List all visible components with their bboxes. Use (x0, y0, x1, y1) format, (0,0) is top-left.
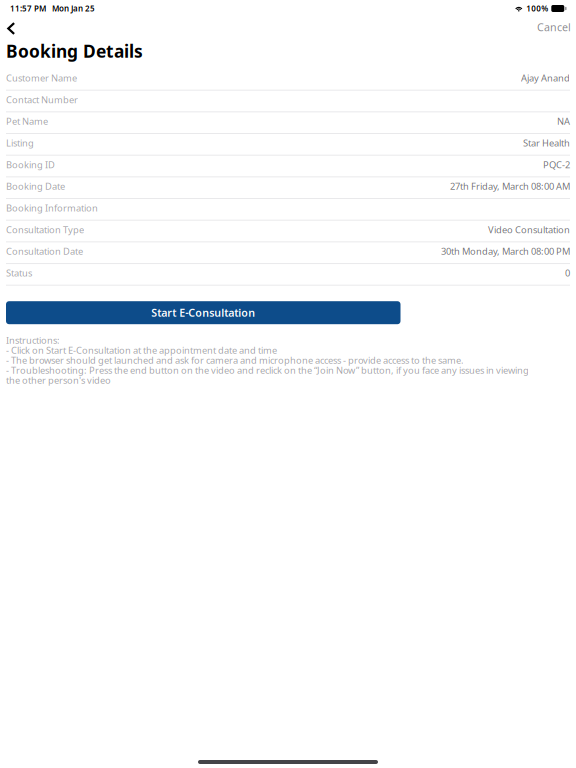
staticText: 27th Friday, March 08:00 AM (450, 180, 570, 192)
button[interactable]: Customer Name (0, 69, 576, 90)
staticText: Cancel (537, 20, 571, 34)
staticText: Booking Date (6, 180, 65, 192)
staticText: - Click on Start E-Consultation at the a… (6, 344, 277, 356)
staticText: 0 (565, 267, 570, 279)
staticText: Status (6, 267, 32, 279)
staticText: Consultation Date (6, 245, 83, 257)
button[interactable]: Consultation Date (0, 242, 576, 263)
staticText: PQC-2 (543, 158, 570, 171)
staticText: Ajay Anand (521, 72, 570, 84)
staticText: Listing (6, 137, 34, 149)
staticText: Mon Jan 25 (52, 3, 95, 14)
staticText: Instructions: (6, 334, 60, 346)
staticText: 11:57 PM (10, 3, 46, 14)
staticText: - The browser should get launched and as… (6, 354, 464, 366)
button[interactable]: Booking Date (0, 177, 576, 198)
staticText: 30th Monday, March 08:00 PM (441, 245, 570, 257)
button[interactable]: Booking ID (0, 156, 576, 176)
button[interactable]: Back (0, 16, 26, 38)
button[interactable]: Pet Name (0, 112, 576, 133)
staticText: Booking Details (6, 39, 143, 62)
staticText: the other person's video (6, 374, 111, 386)
staticText: Booking Information (6, 202, 98, 214)
button[interactable]: Contact Number (0, 91, 576, 111)
button[interactable]: Consultation Type (0, 221, 576, 241)
staticText: Contact Number (6, 93, 78, 106)
staticText: - Troubleshooting: Press the end button … (6, 364, 529, 376)
staticText: Consultation Type (6, 223, 84, 236)
button[interactable]: Status (0, 264, 576, 285)
staticText: Start E-Consultation (151, 306, 255, 320)
staticText: 100% (526, 3, 548, 14)
staticText: Star Health (523, 137, 570, 149)
staticText: Pet Name (6, 115, 48, 127)
staticText: Video Consultation (488, 223, 570, 236)
staticText: NA (557, 115, 570, 127)
staticText: Booking ID (6, 158, 55, 171)
button[interactable]: Listing (0, 134, 576, 155)
button[interactable]: Start E-Consultation (6, 301, 400, 324)
button[interactable]: Booking Information (0, 199, 576, 220)
staticText: Customer Name (6, 72, 77, 84)
button[interactable]: Cancel (525, 15, 576, 39)
